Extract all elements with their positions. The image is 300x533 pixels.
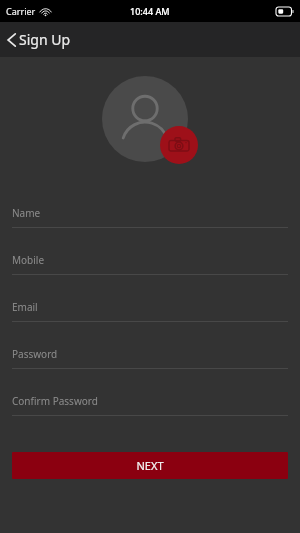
button[interactable]: NEXT [12, 452, 288, 479]
button[interactable]: Mobile [0, 246, 300, 293]
staticText: Confirm Password [12, 394, 98, 408]
staticText: Password [12, 347, 58, 361]
staticText: Sign Up [19, 30, 71, 49]
button[interactable]: Change photo [160, 126, 198, 164]
staticText: Email [12, 300, 38, 314]
button[interactable]: Profile photo [102, 76, 188, 162]
button[interactable]: Back [0, 27, 19, 53]
button[interactable]: Confirm Password [0, 387, 300, 434]
staticText: Name [12, 206, 41, 220]
button[interactable]: Email [0, 293, 300, 340]
staticText: Carrier [6, 5, 36, 17]
staticText: NEXT [136, 458, 164, 473]
staticText: 10:44 AM [130, 5, 170, 17]
staticText: Mobile [12, 253, 45, 267]
button[interactable]: Password [0, 340, 300, 387]
button[interactable]: Name [0, 199, 300, 246]
